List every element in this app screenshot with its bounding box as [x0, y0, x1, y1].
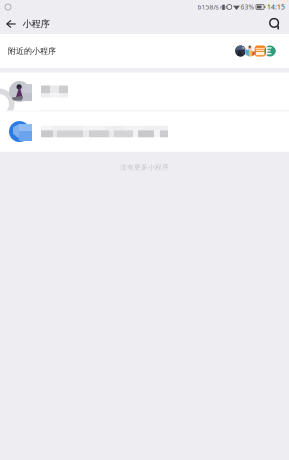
staticText: 没有更多小程序	[120, 163, 169, 171]
button[interactable]	[0, 111, 289, 152]
staticText: 63%	[240, 3, 254, 11]
button[interactable]	[0, 72, 289, 110]
staticText: 6158/s	[198, 3, 219, 11]
button[interactable]: Back	[0, 14, 23, 34]
staticText: 14:15	[267, 3, 285, 11]
staticText: 附近的小程序	[8, 46, 56, 56]
staticText: 小程序	[23, 18, 50, 30]
button[interactable]: Search	[263, 14, 289, 34]
